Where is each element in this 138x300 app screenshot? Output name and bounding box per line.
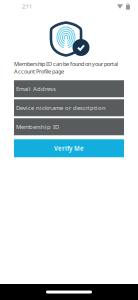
staticText: Membership ID can be found on your porta… — [14, 60, 118, 75]
button[interactable]: Email Address — [14, 80, 124, 97]
staticText: Membership ID — [16, 123, 59, 131]
staticText: Verify Me — [54, 144, 84, 152]
button[interactable]: Device nickname or description — [14, 99, 124, 116]
button[interactable]: Membership ID — [14, 118, 124, 135]
staticText: 2:11 — [22, 3, 32, 10]
staticText: Email Address — [16, 85, 56, 93]
button[interactable]: Verify Me — [14, 139, 124, 157]
staticText: Device nickname or description — [16, 104, 106, 112]
